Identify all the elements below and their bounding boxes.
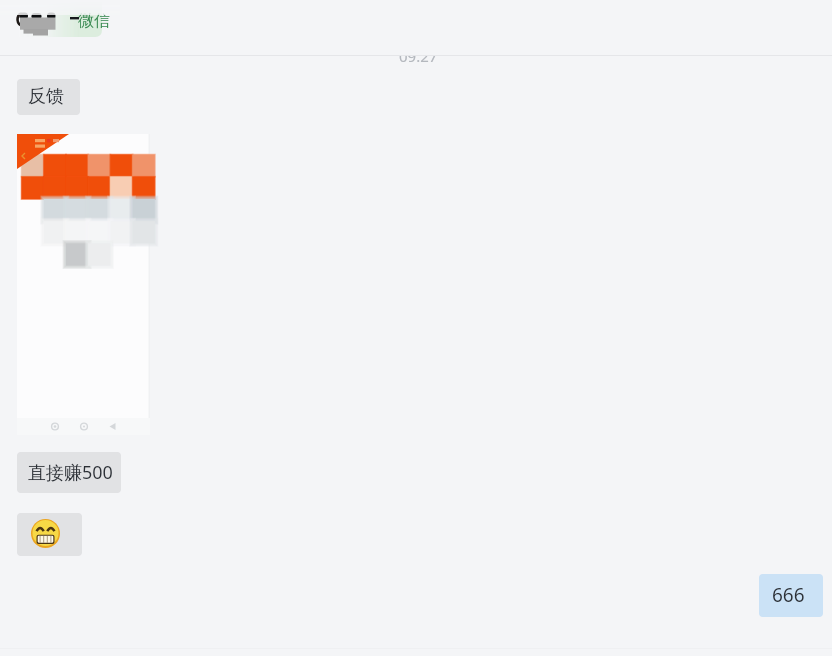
button[interactable]: 666	[759, 574, 823, 617]
button[interactable]: Grinning emoji	[17, 513, 82, 556]
button[interactable]: Screenshot image	[17, 134, 155, 435]
staticText: 微信	[78, 11, 110, 31]
staticText: 直接赚500	[28, 460, 113, 485]
staticText: 反馈	[28, 85, 64, 108]
button[interactable]: 反馈	[17, 79, 80, 115]
button[interactable]: Message	[0, 0, 120, 40]
button[interactable]: 直接赚500	[17, 452, 121, 493]
staticText: 666	[772, 582, 805, 608]
staticText: 09:27	[399, 46, 438, 66]
